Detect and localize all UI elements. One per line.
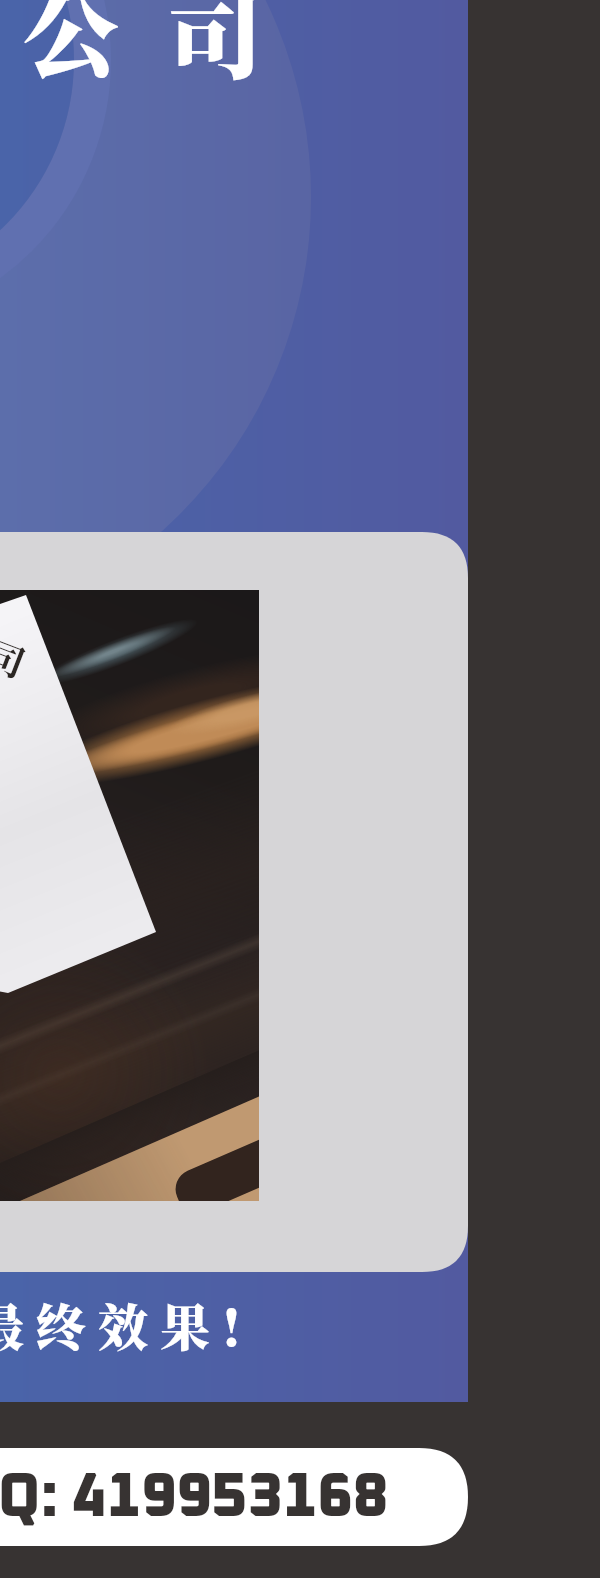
button[interactable]: QQ: (0, 1468, 59, 1529)
staticText: 司 (0, 627, 34, 689)
button[interactable]: 公司 (23, 0, 311, 98)
staticText: 最终效果! (0, 1288, 253, 1360)
button[interactable]: 419953168 (71, 1468, 389, 1529)
staticText: QQ: (0, 1468, 59, 1529)
staticText: 公司 (23, 0, 311, 98)
staticText: 419953168 (71, 1468, 389, 1529)
button[interactable]: 最终效果! (0, 1288, 253, 1360)
